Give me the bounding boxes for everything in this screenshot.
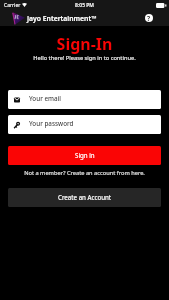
- staticText: 8:05 PM: [0, 2, 169, 9]
- staticText: Carrier: [4, 2, 21, 9]
- button[interactable]: Your email: [14, 90, 155, 109]
- staticText: Sign in: [75, 151, 95, 159]
- staticText: Your password: [29, 119, 74, 128]
- button[interactable]: Sign in: [8, 146, 161, 165]
- staticText: Your email: [29, 94, 62, 103]
- button[interactable]: Create an Account: [8, 188, 161, 207]
- button[interactable]: Not a member? Create an account from her…: [0, 169, 169, 177]
- button[interactable]: Your password: [14, 115, 155, 134]
- staticText: ?: [147, 14, 151, 22]
- staticText: Sign-In: [0, 33, 169, 55]
- staticText: Jayo Entertainment™: [27, 14, 97, 23]
- staticText: Create an Account: [58, 193, 112, 201]
- button[interactable]: Help: [145, 14, 153, 22]
- staticText: Hello there! Please sign in to continue.: [0, 54, 169, 62]
